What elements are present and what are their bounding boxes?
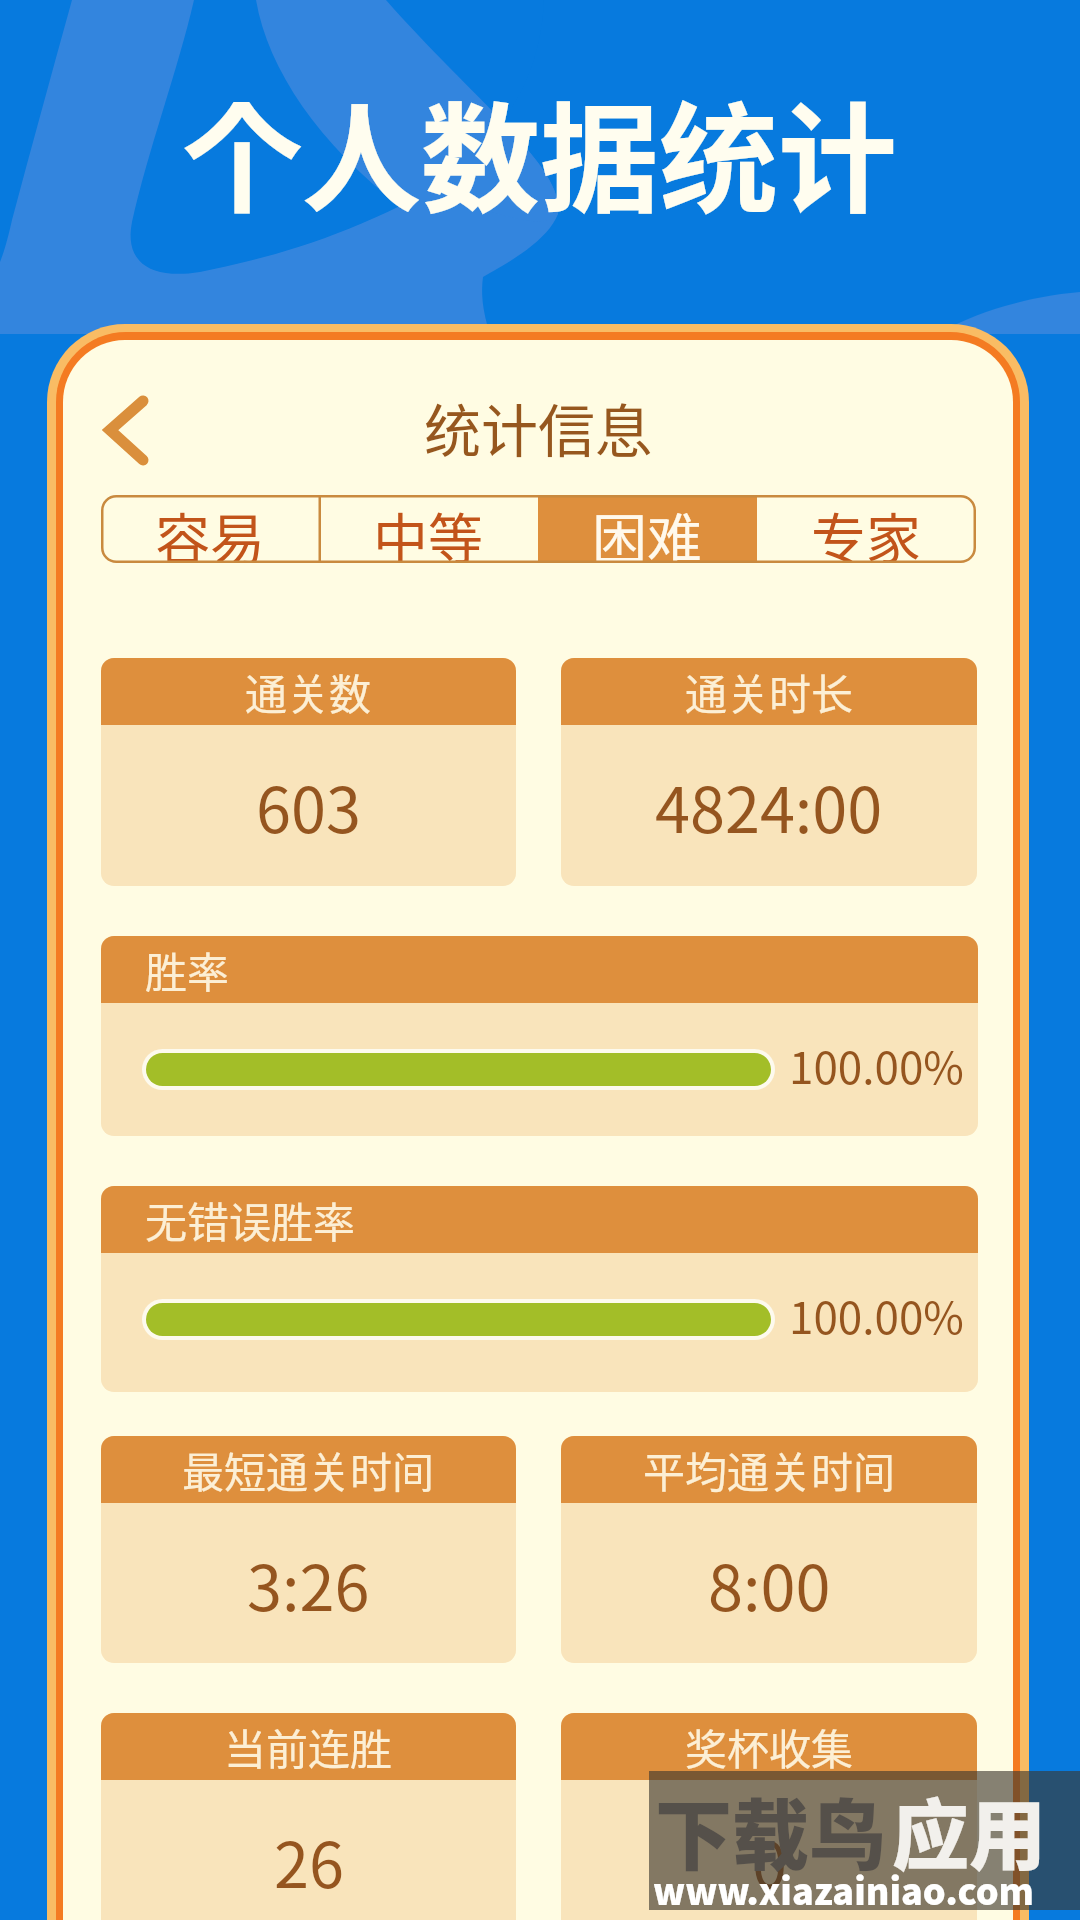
staticText: 统计信息 xyxy=(424,386,652,469)
button[interactable]: 专家 xyxy=(757,495,976,563)
button[interactable]: 中等 xyxy=(319,495,538,563)
staticText: 当前连胜 xyxy=(224,1716,393,1777)
staticText: 8:00 xyxy=(708,1538,831,1629)
staticText: 通关时长 xyxy=(685,661,854,722)
staticText: 平均通关时间 xyxy=(643,1439,896,1500)
button[interactable]: 通关时长 xyxy=(561,658,977,886)
staticText: 胜率 xyxy=(145,939,230,1000)
button[interactable]: 无错误胜率 xyxy=(101,1186,978,1392)
staticText: 4824:00 xyxy=(655,760,883,851)
button[interactable]: 奖杯收集 xyxy=(561,1713,977,1920)
staticText: 应用 xyxy=(892,1775,1046,1886)
staticText: 中等 xyxy=(373,495,484,563)
button[interactable]: Back xyxy=(95,386,163,474)
staticText: 专家 xyxy=(811,495,922,563)
staticText: 0 xyxy=(752,1815,787,1906)
staticText: 困难 xyxy=(592,495,703,563)
staticText: 通关数 xyxy=(245,661,372,722)
button[interactable]: 平均通关时间 xyxy=(561,1436,977,1663)
staticText: 26 xyxy=(274,1815,344,1906)
staticText: 个人数据统计 xyxy=(183,65,897,237)
button[interactable]: 困难 xyxy=(538,495,757,563)
button[interactable]: 容易 xyxy=(101,495,319,563)
button[interactable]: 胜率 xyxy=(101,936,978,1136)
staticText: www.xiazainiao.com xyxy=(653,1863,1035,1915)
button[interactable]: 最短通关时间 xyxy=(101,1436,516,1663)
staticText: 奖杯收集 xyxy=(685,1716,854,1777)
staticText: 最短通关时间 xyxy=(182,1439,435,1500)
button[interactable]: 通关数 xyxy=(101,658,516,886)
staticText: 3:26 xyxy=(247,1538,370,1629)
staticText: 603 xyxy=(256,760,361,851)
staticText: 容易 xyxy=(155,495,266,563)
staticText: 下载鸟 xyxy=(655,1775,886,1886)
button[interactable]: 当前连胜 xyxy=(101,1713,516,1920)
staticText: 无错误胜率 xyxy=(145,1189,356,1250)
staticText: 100.00% xyxy=(789,1033,964,1097)
staticText: 100.00% xyxy=(789,1283,964,1347)
